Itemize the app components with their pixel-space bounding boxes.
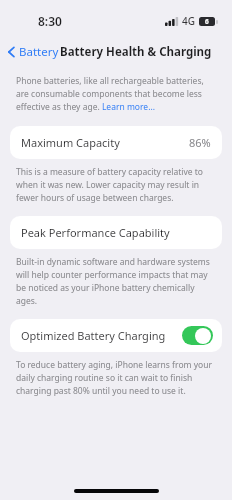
staticText: 4G bbox=[182, 14, 195, 28]
staticText: Battery Health & Charging bbox=[60, 44, 212, 60]
staticText: Optimized Battery Charging bbox=[21, 328, 166, 343]
staticText: To reduce battery aging, iPhone learns f… bbox=[16, 359, 216, 397]
staticText: Peak Performance Capability bbox=[21, 225, 170, 240]
button[interactable]: Peak Performance Capability bbox=[10, 216, 222, 249]
button[interactable]: Battery bbox=[0, 42, 63, 62]
staticText: This is a measure of battery capacity re… bbox=[16, 166, 216, 204]
button[interactable]: Optimized Battery Charging toggle, on bbox=[182, 326, 213, 345]
button[interactable]: Optimized Battery Charging bbox=[10, 319, 222, 352]
staticText: Battery bbox=[19, 44, 59, 60]
staticText: Maximum Capacity bbox=[21, 135, 120, 150]
button[interactable]: Maximum Capacity bbox=[10, 126, 222, 159]
staticText: 6 bbox=[205, 17, 209, 26]
staticText: 86% bbox=[189, 135, 211, 150]
staticText: 8:30 bbox=[38, 13, 62, 29]
button[interactable]: Phone batteries, like all rechargeable b… bbox=[16, 75, 216, 113]
staticText: Built-in dynamic software and hardware s… bbox=[16, 256, 216, 307]
